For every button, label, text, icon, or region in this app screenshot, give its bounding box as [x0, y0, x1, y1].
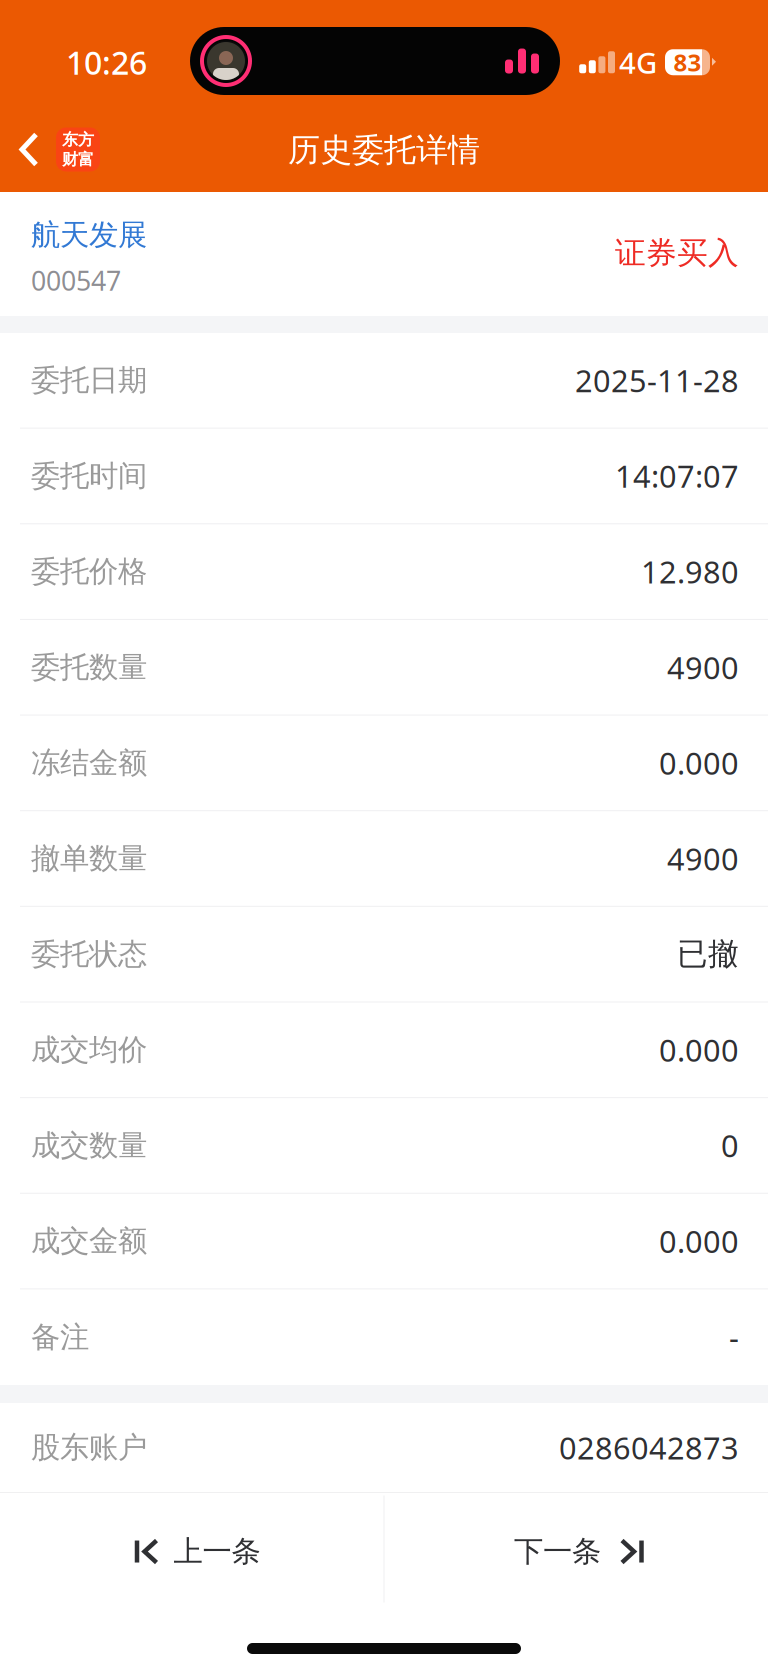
staticText: 委托状态 — [31, 936, 147, 972]
staticText: 上一条 — [173, 1533, 260, 1569]
staticText: 4900 — [667, 647, 739, 688]
staticText: 0286042873 — [559, 1427, 739, 1468]
staticText: 冻结金额 — [31, 745, 147, 781]
staticText: 12.980 — [641, 551, 739, 592]
staticText: 000547 — [31, 263, 121, 298]
staticText: 委托价格 — [31, 554, 147, 590]
button[interactable]: 上一条 — [0, 1493, 384, 1605]
staticText: 东方 — [62, 130, 94, 149]
staticText: 成交数量 — [31, 1127, 147, 1163]
staticText: 委托数量 — [31, 649, 147, 685]
staticText: 0.000 — [659, 1029, 739, 1070]
staticText: 14:07:07 — [615, 456, 739, 496]
staticText: 0 — [721, 1125, 739, 1166]
staticText: 备注 — [31, 1319, 89, 1355]
staticText: 已撤 — [677, 935, 739, 973]
staticText: 委托时间 — [31, 458, 147, 494]
staticText: 4900 — [667, 838, 739, 879]
staticText: - — [729, 1317, 739, 1358]
staticText: 成交金额 — [31, 1223, 147, 1259]
staticText: 4G — [619, 43, 657, 82]
staticText: 历史委托详情 — [288, 130, 480, 170]
staticText: 0.000 — [659, 742, 739, 783]
staticText: 股东账户 — [31, 1429, 147, 1465]
button[interactable]: 返回 — [0, 112, 100, 192]
staticText: 委托日期 — [31, 362, 147, 398]
staticText: 下一条 — [514, 1533, 601, 1569]
staticText: 10:26 — [66, 41, 147, 83]
staticText: 83 — [673, 46, 701, 78]
staticText: 成交均价 — [31, 1032, 147, 1068]
staticText: 航天发展 — [31, 217, 147, 253]
staticText: 财富 — [62, 149, 94, 169]
staticText: 0.000 — [659, 1221, 739, 1261]
button[interactable]: 下一条 — [384, 1493, 768, 1605]
staticText: 证券买入 — [615, 234, 739, 272]
staticText: 撤单数量 — [31, 840, 147, 876]
staticText: 2025-11-28 — [575, 360, 739, 401]
